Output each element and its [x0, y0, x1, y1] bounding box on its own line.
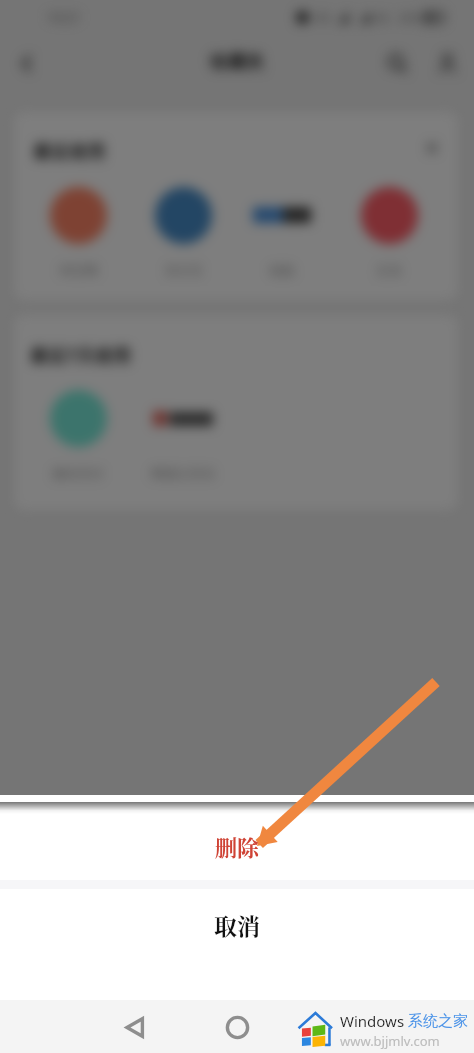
- button[interactable]: 支付宝: [150, 186, 216, 278]
- staticText: www.bjjmlv.com: [340, 1032, 440, 1050]
- button[interactable]: Back: [118, 1010, 152, 1044]
- button[interactable]: 取消: [0, 889, 474, 961]
- button[interactable]: Account: [432, 48, 462, 78]
- button[interactable]: 钥匙: [249, 186, 315, 278]
- staticText: 删除: [215, 831, 260, 863]
- button[interactable]: Back: [12, 48, 42, 78]
- staticText: 最近7天使用: [30, 343, 131, 368]
- staticText: 取消: [214, 909, 260, 942]
- button[interactable]: 微信支付: [45, 389, 111, 481]
- staticText: 系统之家: [408, 1012, 468, 1031]
- button[interactable]: 网易云音乐: [150, 389, 216, 481]
- staticText: 65%: [399, 10, 421, 25]
- button[interactable]: Home: [220, 1010, 254, 1044]
- button[interactable]: 京东: [356, 186, 422, 278]
- button[interactable]: 淘宝网: [45, 186, 111, 278]
- button[interactable]: 删除: [0, 814, 474, 880]
- staticText: Windows: [340, 1011, 408, 1031]
- button[interactable]: Search: [382, 48, 412, 78]
- staticText: 最近使用: [33, 141, 105, 164]
- staticText: 收藏夹: [210, 51, 264, 74]
